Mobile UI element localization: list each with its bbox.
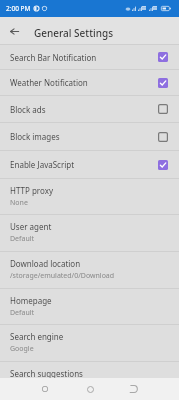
staticText: Default	[10, 234, 35, 244]
button[interactable]: Home	[80, 379, 100, 399]
staticText: Download location	[10, 258, 81, 269]
staticText: Enable JavaScript	[10, 159, 158, 170]
button[interactable]: User agent	[0, 215, 179, 251]
button[interactable]: Back	[0, 17, 28, 44]
staticText: User agent	[10, 221, 52, 232]
staticText: 2:00 PM	[6, 4, 31, 13]
button[interactable]: Download location	[0, 252, 179, 288]
staticText: General Settings	[34, 26, 113, 40]
staticText: Search engine	[10, 331, 64, 342]
button[interactable]: Search suggestions	[0, 362, 179, 378]
staticText: Block images	[10, 131, 158, 142]
button[interactable]: Homepage	[0, 289, 179, 324]
button[interactable]: Weather Notification	[0, 70, 179, 95]
button[interactable]: Search engine	[0, 325, 179, 361]
staticText: Search Bar Notification	[10, 52, 158, 63]
button[interactable]: Recent apps	[35, 379, 55, 399]
staticText: Search suggestions	[10, 368, 83, 378]
staticText: HTTP proxy	[10, 185, 53, 196]
button[interactable]: Block images	[0, 123, 179, 150]
staticText: Block ads	[10, 104, 158, 115]
staticText: Weather Notification	[10, 77, 158, 88]
button[interactable]: Enable JavaScript	[0, 151, 179, 178]
staticText: Google	[10, 344, 34, 354]
staticText: None	[10, 198, 28, 208]
button[interactable]: Block ads	[0, 96, 179, 122]
button[interactable]: Back	[124, 379, 144, 399]
button[interactable]: Search Bar Notification	[0, 45, 179, 69]
button[interactable]: HTTP proxy	[0, 179, 179, 214]
staticText: /storage/emulated/0/Download	[10, 271, 115, 281]
staticText: Default	[10, 308, 35, 318]
staticText: Homepage	[10, 295, 52, 306]
